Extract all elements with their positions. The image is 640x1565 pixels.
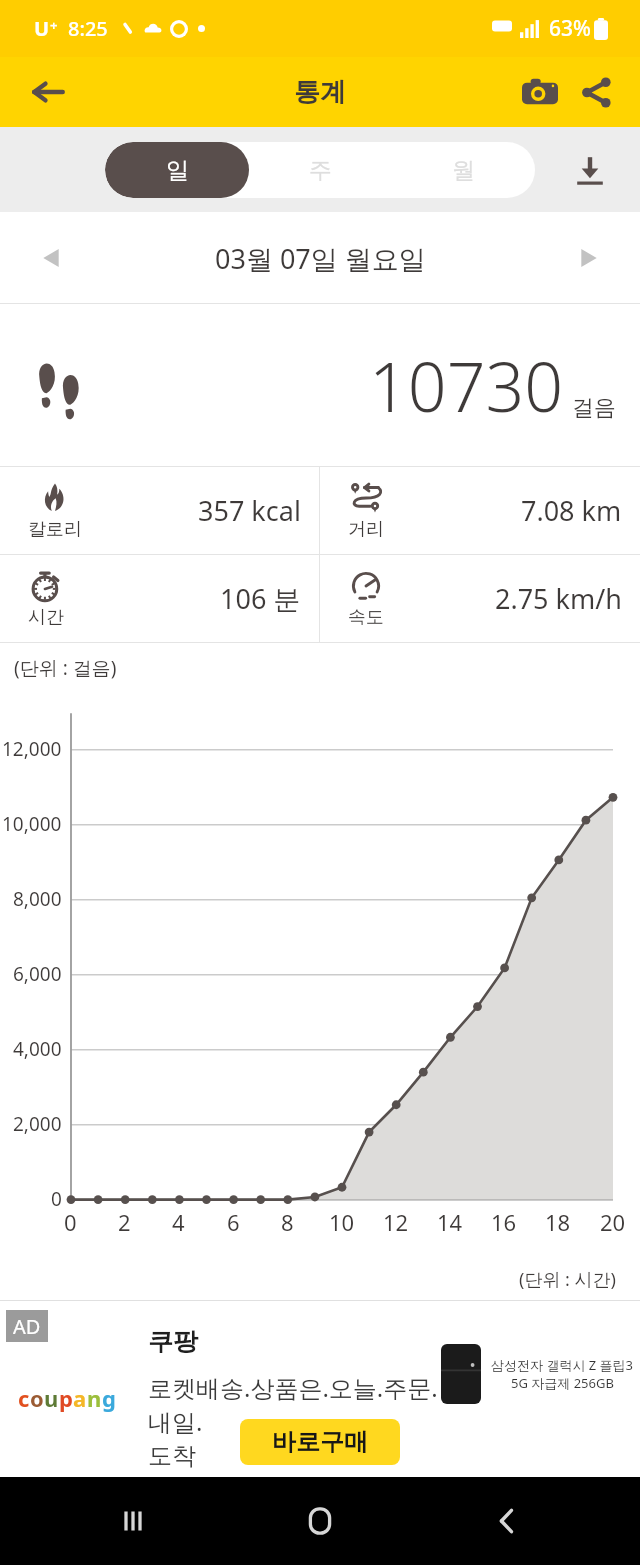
staticText: 16 xyxy=(491,1207,517,1237)
staticText: 삼성전자 갤럭시 Z 플립3 xyxy=(491,1356,634,1374)
staticText: (단위 : 시간) xyxy=(519,1267,616,1292)
staticText: n xyxy=(87,1383,102,1413)
staticText: 일 xyxy=(166,156,189,185)
staticText: 357 kcal xyxy=(198,492,301,529)
staticText: 5G 자급제 256GB xyxy=(511,1374,614,1392)
staticText: g xyxy=(102,1383,116,1413)
staticText: 10,000 xyxy=(2,811,62,837)
staticText: 시간 xyxy=(28,606,64,629)
staticText: 20 xyxy=(600,1207,626,1237)
staticText: 월 xyxy=(452,156,475,185)
staticText: 0 xyxy=(64,1207,77,1237)
staticText: 거리 xyxy=(348,518,384,541)
staticText: 0 xyxy=(51,1186,62,1212)
button[interactable]: AD xyxy=(0,1300,640,1477)
staticText: 8 xyxy=(281,1207,294,1237)
staticText: 10730 xyxy=(369,339,564,432)
staticText: 6 xyxy=(227,1207,240,1237)
button[interactable]: Next day xyxy=(562,231,616,285)
staticText: 63% xyxy=(549,14,591,43)
staticText: 8:25 xyxy=(68,15,108,42)
button[interactable]: Previous day xyxy=(24,231,78,285)
staticText: 걸음 xyxy=(572,394,616,422)
staticText: AD xyxy=(13,1313,41,1340)
button[interactable]: Home xyxy=(291,1492,349,1550)
button[interactable]: 주 xyxy=(249,142,392,198)
button[interactable]: 월 xyxy=(392,142,535,198)
staticText: 14 xyxy=(437,1207,463,1237)
button[interactable]: 시간 xyxy=(0,555,319,642)
button[interactable]: Back xyxy=(478,1492,536,1550)
button[interactable]: 칼로리 xyxy=(0,467,319,554)
staticText: o xyxy=(30,1383,44,1413)
button[interactable]: Camera xyxy=(512,64,568,120)
staticText: + xyxy=(50,16,58,34)
staticText: 12 xyxy=(383,1207,409,1237)
staticText: 03월 07일 월요일 xyxy=(215,240,426,277)
staticText: 통계 xyxy=(294,76,346,109)
staticText: u xyxy=(44,1383,59,1413)
staticText: 8,000 xyxy=(13,886,62,912)
staticText: 쿠팡 xyxy=(148,1326,198,1357)
staticText: 106 분 xyxy=(220,580,301,617)
button[interactable]: 거리 xyxy=(320,467,640,554)
staticText: 로켓배송.상품은.오늘.주문.내일. 도착 xyxy=(148,1371,444,1471)
button[interactable]: Share xyxy=(568,64,624,120)
button[interactable]: 바로구매 xyxy=(240,1419,400,1465)
button[interactable]: Download xyxy=(562,142,618,198)
staticText: 12,000 xyxy=(2,736,62,762)
staticText: 4 xyxy=(172,1207,185,1237)
button[interactable]: 일 xyxy=(105,142,249,198)
staticText: 칼로리 xyxy=(28,518,82,541)
staticText: 10 xyxy=(329,1207,355,1237)
staticText: (단위 : 걸음) xyxy=(14,655,117,681)
staticText: 바로구매 xyxy=(272,1427,368,1457)
staticText: 2 xyxy=(118,1207,131,1237)
staticText: 6,000 xyxy=(13,961,62,987)
staticText: 속도 xyxy=(348,606,384,629)
staticText: U xyxy=(34,15,50,42)
staticText: p xyxy=(59,1383,73,1413)
button[interactable]: Back xyxy=(20,64,76,120)
button[interactable]: 속도 xyxy=(320,555,640,642)
staticText: 주 xyxy=(309,156,332,185)
staticText: 7.08 km xyxy=(521,492,622,529)
staticText: a xyxy=(73,1383,87,1413)
staticText: c xyxy=(18,1383,30,1413)
staticText: 2,000 xyxy=(13,1111,62,1137)
staticText: 18 xyxy=(545,1207,571,1237)
staticText: 4,000 xyxy=(13,1036,62,1062)
staticText: 2.75 km/h xyxy=(495,580,622,617)
button[interactable]: Recent apps xyxy=(104,1492,162,1550)
